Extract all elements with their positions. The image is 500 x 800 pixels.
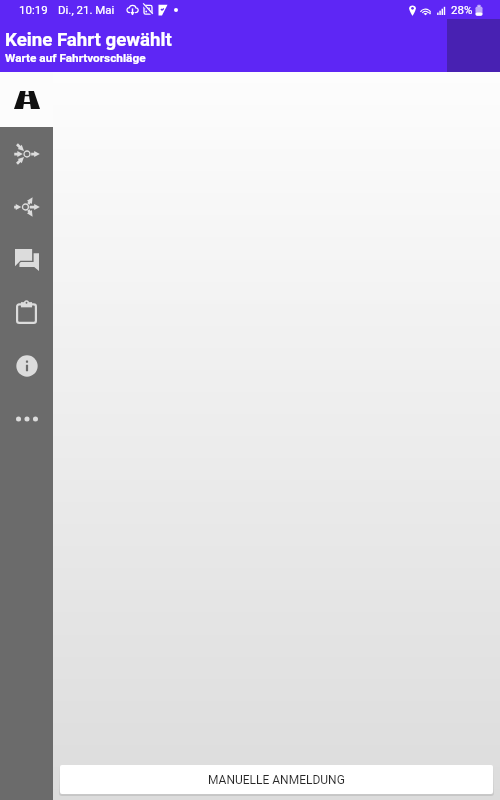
- staticText: 28%: [451, 3, 473, 16]
- staticText: Keine Fahrt gewählt: [5, 29, 172, 51]
- button[interactable]: Tasks: [0, 286, 53, 339]
- button[interactable]: Messages: [0, 233, 53, 286]
- button[interactable]: Information: [0, 339, 53, 392]
- button[interactable]: Route: [0, 72, 53, 127]
- staticText: Warte auf Fahrtvorschläge: [5, 51, 146, 65]
- button[interactable]: Distribute orders: [0, 180, 53, 233]
- staticText: 10:19: [19, 3, 48, 16]
- button[interactable]: More: [0, 392, 53, 445]
- button[interactable]: Collect orders: [0, 127, 53, 180]
- staticText: Di., 21. Mai: [58, 3, 115, 16]
- staticText: MANUELLE ANMELDUNG: [208, 773, 345, 787]
- button[interactable]: MANUELLE ANMELDUNG: [60, 765, 493, 794]
